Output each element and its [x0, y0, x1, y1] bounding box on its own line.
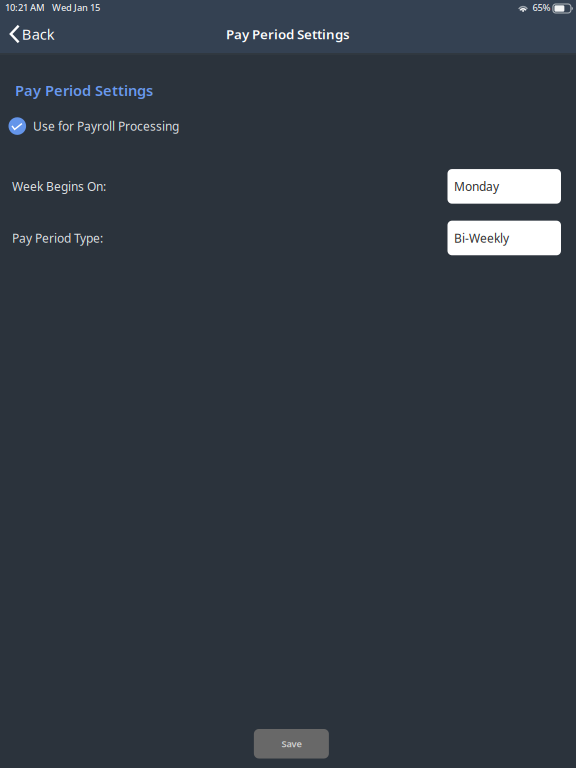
staticText: Bi-Weekly — [454, 230, 509, 246]
staticText: Save — [281, 738, 301, 750]
staticText: 10:21 AM — [5, 1, 45, 14]
button[interactable]: Back — [0, 17, 65, 51]
staticText: 65% — [532, 1, 550, 14]
staticText: Pay Period Type: — [12, 230, 103, 246]
button[interactable]: Save — [254, 729, 329, 758]
button[interactable]: Bi-Weekly — [447, 221, 561, 255]
staticText: Week Begins On: — [12, 178, 106, 194]
staticText: Pay Period Settings — [226, 25, 350, 43]
staticText: Monday — [454, 178, 499, 194]
staticText: Wed Jan 15 — [52, 1, 100, 14]
staticText: Back — [22, 24, 55, 44]
staticText: Use for Payroll Processing — [33, 118, 179, 134]
staticText: Pay Period Settings — [15, 81, 153, 100]
button[interactable]: Monday — [447, 169, 561, 204]
button[interactable]: Use for Payroll Processing — [0, 116, 183, 136]
